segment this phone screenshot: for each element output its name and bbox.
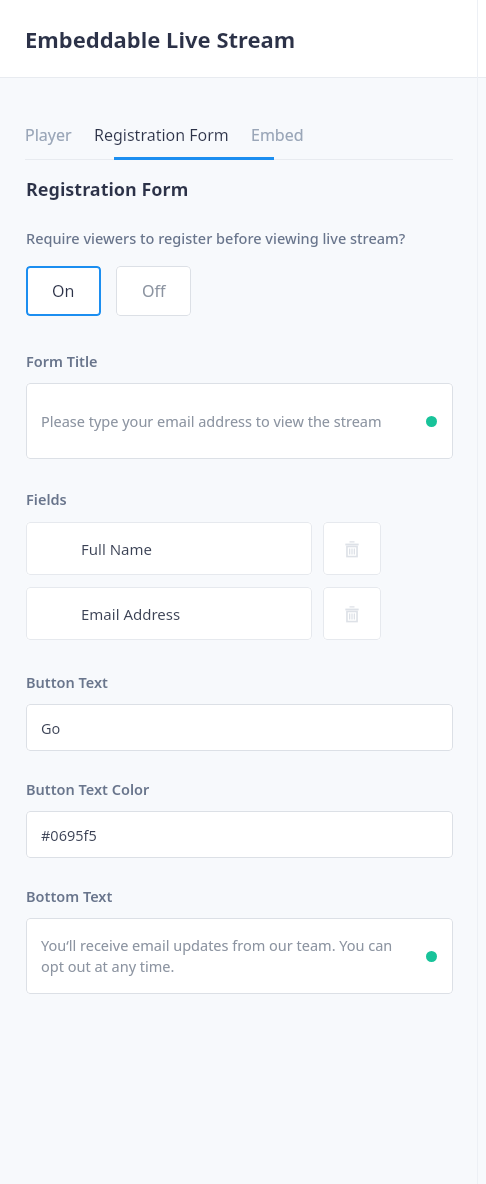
staticText: Registration Form <box>26 177 189 202</box>
button[interactable]: Embed <box>251 124 304 160</box>
button[interactable]: Full Name <box>26 522 312 575</box>
staticText: Off <box>142 280 166 302</box>
staticText: Require viewers to register before viewi… <box>26 228 406 248</box>
button[interactable]: Delete field <box>323 522 381 575</box>
staticText: Registration Form <box>94 124 229 146</box>
button[interactable]: On <box>26 266 101 316</box>
staticText: Please type your email address to view t… <box>41 411 382 431</box>
staticText: Bottom Text <box>26 886 113 906</box>
staticText: Email Address <box>81 604 181 624</box>
staticText: On <box>52 280 75 302</box>
staticText: Full Name <box>81 539 152 559</box>
button[interactable]: Off <box>116 266 191 316</box>
staticText: Embeddable Live Stream <box>25 24 296 54</box>
staticText: Form Title <box>26 351 98 371</box>
button[interactable]: Delete field <box>323 587 381 640</box>
staticText: Player <box>25 124 72 146</box>
staticText: Button Text Color <box>26 779 150 799</box>
staticText: Fields <box>26 489 67 509</box>
button[interactable]: You‘ll receive email updates from our te… <box>26 918 453 994</box>
button[interactable]: Registration Form <box>94 124 229 160</box>
button[interactable]: Please type your email address to view t… <box>26 383 453 459</box>
staticText: Go <box>41 718 61 738</box>
button[interactable]: Player <box>25 124 72 160</box>
button[interactable]: Email Address <box>26 587 312 640</box>
button[interactable]: Go <box>26 704 453 751</box>
staticText: #0695f5 <box>41 825 97 845</box>
button[interactable]: #0695f5 <box>26 811 453 858</box>
staticText: Button Text <box>26 672 108 692</box>
staticText: You‘ll receive email updates from our te… <box>41 935 409 977</box>
staticText: Embed <box>251 124 304 146</box>
